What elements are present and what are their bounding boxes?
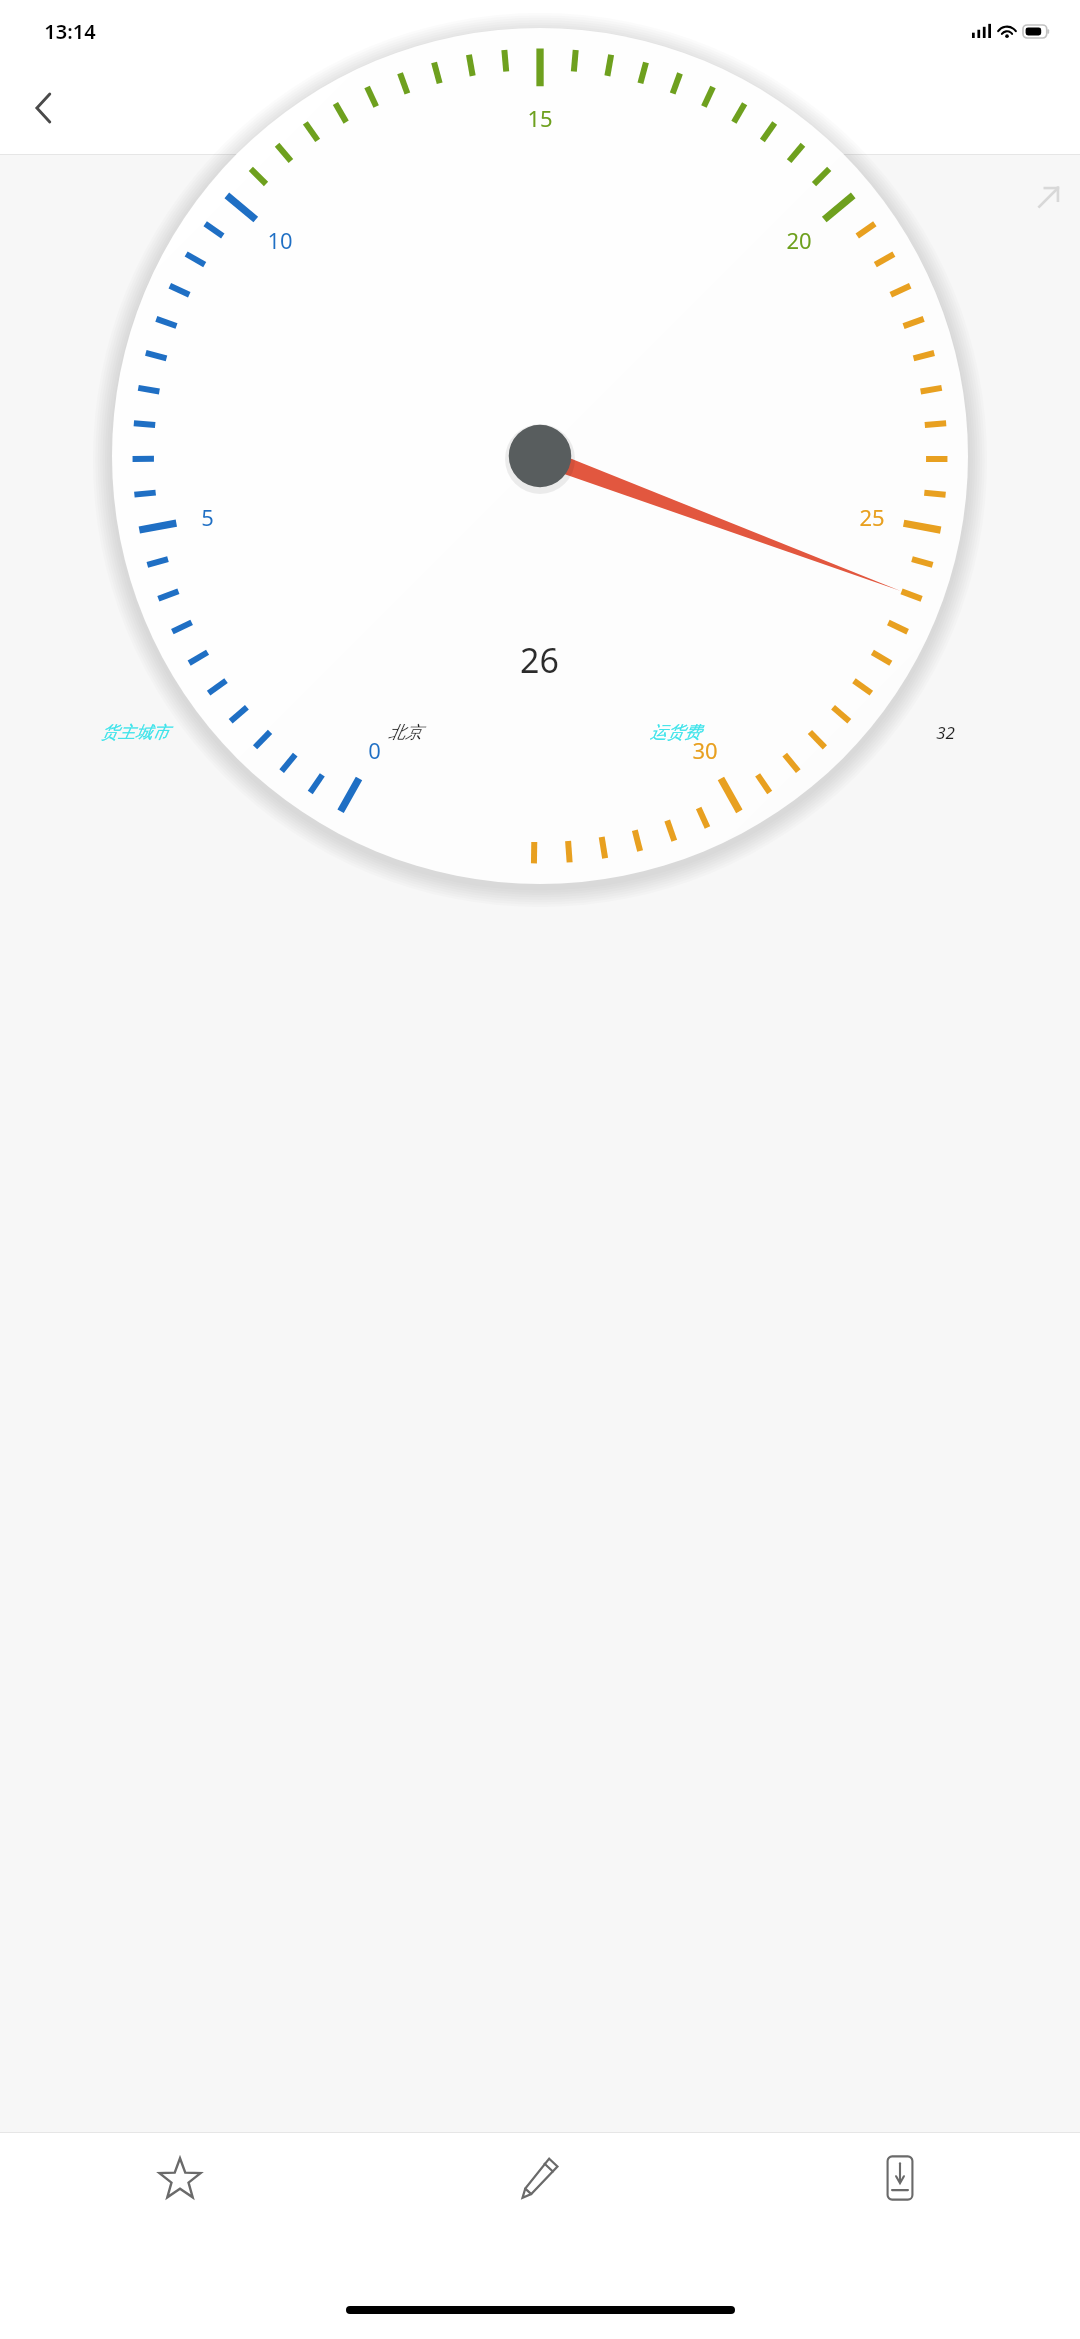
staticText: 15 bbox=[527, 103, 553, 133]
staticText: 13:14 bbox=[44, 18, 96, 45]
button[interactable]: 运货费 bbox=[540, 703, 810, 761]
staticText: 5 bbox=[201, 502, 214, 532]
button[interactable]: 货主城市 bbox=[0, 703, 270, 761]
button[interactable]: Download bbox=[720, 2133, 1080, 2281]
staticText: 货主城市 bbox=[101, 722, 169, 743]
staticText: 仪表板刷新 bbox=[478, 93, 603, 124]
staticText: 26 bbox=[520, 637, 559, 683]
staticText: 10 bbox=[267, 225, 293, 255]
staticText: 32 bbox=[936, 721, 955, 744]
staticText: 运货费 bbox=[650, 722, 701, 743]
staticText: 0 bbox=[368, 735, 381, 765]
staticText: 20 bbox=[786, 225, 812, 255]
staticText: 25 bbox=[859, 502, 885, 532]
staticText: 北京 bbox=[388, 722, 422, 743]
button[interactable]: 北京 bbox=[270, 703, 540, 761]
button[interactable]: 32 bbox=[810, 703, 1080, 761]
button[interactable]: Edit bbox=[360, 2133, 720, 2281]
staticText: 30 bbox=[692, 735, 718, 765]
button[interactable]: Favorite bbox=[0, 2133, 360, 2281]
button[interactable]: Expand bbox=[1024, 173, 1072, 221]
button[interactable]: Back bbox=[12, 77, 74, 139]
